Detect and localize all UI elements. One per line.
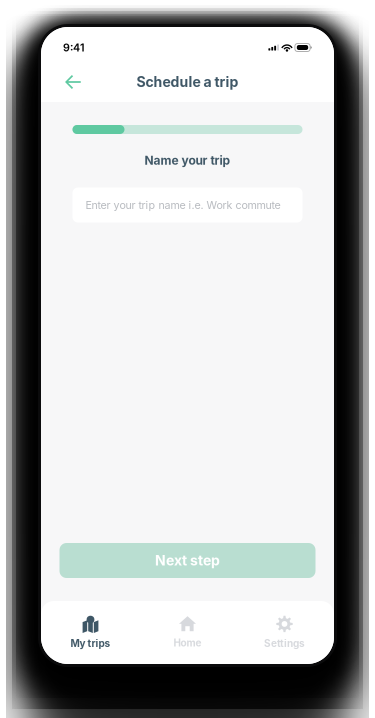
button[interactable]: Home (139, 601, 236, 664)
button[interactable]: Next step (59, 543, 315, 578)
staticText: Settings (264, 637, 305, 649)
button[interactable]: Settings (236, 601, 333, 664)
staticText: Next step (155, 552, 220, 569)
staticText: 9:41 (63, 41, 85, 54)
staticText: Enter your trip name i.e. Work commute (85, 199, 280, 211)
button[interactable]: Back (57, 67, 89, 97)
staticText: My trips (70, 637, 110, 649)
staticText: Name your trip (144, 153, 230, 167)
staticText: Schedule a trip (136, 73, 238, 90)
staticText: Home (173, 637, 201, 649)
button[interactable]: My trips (42, 601, 139, 664)
